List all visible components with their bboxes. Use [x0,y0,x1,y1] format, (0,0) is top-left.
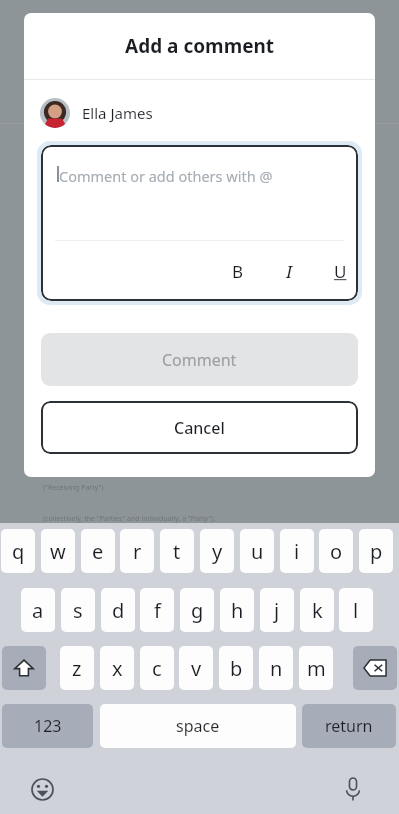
button[interactable]: Dictation [337,773,369,805]
staticText: 123 [34,715,62,737]
button[interactable]: v [179,646,213,690]
button[interactable]: h [220,588,254,632]
button[interactable]: x [100,646,134,690]
button[interactable]: y [200,529,234,573]
staticText: space [176,715,220,737]
staticText: u [251,538,264,565]
staticText: Cancel [174,417,225,439]
button[interactable]: k [300,588,334,632]
button[interactable]: o [319,529,353,573]
button[interactable]: b [219,646,253,690]
staticText: n [270,655,283,682]
staticText: y [212,538,223,565]
staticText: j [274,597,280,624]
button[interactable]: t [160,529,194,573]
button[interactable]: Emoji [26,773,58,805]
staticText: d [112,597,125,624]
button[interactable]: B [221,256,255,286]
staticText: o [330,538,343,565]
staticText: p [370,538,383,565]
button[interactable]: Shift [2,646,46,690]
button[interactable]: Cancel [41,401,358,454]
button[interactable]: Comment or add others with @ [41,145,358,301]
button[interactable]: a [21,588,55,632]
button[interactable]: d [101,588,135,632]
button[interactable]: z [60,646,94,690]
staticText: w [50,538,66,565]
staticText: B [232,260,244,283]
staticText: I [286,260,293,283]
staticText: (collectively, the "Parties" and individ… [43,514,216,524]
button[interactable]: 123 [2,704,93,748]
staticText: ("Receiving Party") [43,483,104,493]
staticText: s [73,597,83,624]
staticText: e [92,538,104,565]
staticText: z [72,655,82,682]
button[interactable]: q [1,529,35,573]
staticText: b [230,655,243,682]
button[interactable]: c [140,646,174,690]
button[interactable]: p [359,529,393,573]
staticText: v [191,655,202,682]
staticText: g [191,597,204,624]
staticText: k [312,597,323,624]
staticText: m [307,655,326,682]
staticText: U [334,260,347,283]
staticText: r [133,538,142,565]
button[interactable]: return [302,704,396,748]
button[interactable]: g [180,588,214,632]
button[interactable]: u [240,529,274,573]
staticText: f [154,597,161,624]
button[interactable]: s [61,588,95,632]
button[interactable]: w [41,529,75,573]
button[interactable]: m [299,646,333,690]
button[interactable]: I [272,256,306,286]
staticText: q [12,538,25,565]
staticText: return [325,715,373,737]
staticText: h [231,597,244,624]
staticText: Add a comment [125,33,275,59]
staticText: c [152,655,162,682]
staticText: Comment or add others with @ [59,166,273,186]
staticText: Ella James [82,103,153,123]
staticText: x [112,655,123,682]
button[interactable]: n [259,646,293,690]
button[interactable]: i [280,529,314,573]
button[interactable]: Comment [41,333,358,386]
button[interactable]: Backspace [353,646,397,690]
staticText: a [32,597,44,624]
button[interactable]: space [100,704,296,748]
button[interactable]: l [339,588,373,632]
staticText: i [294,538,300,565]
staticText: t [173,538,181,565]
button[interactable]: U [323,256,357,286]
button[interactable]: f [140,588,174,632]
button[interactable]: e [81,529,115,573]
button[interactable]: j [260,588,294,632]
staticText: l [353,597,359,624]
staticText: Comment [162,349,237,371]
button[interactable]: r [120,529,154,573]
